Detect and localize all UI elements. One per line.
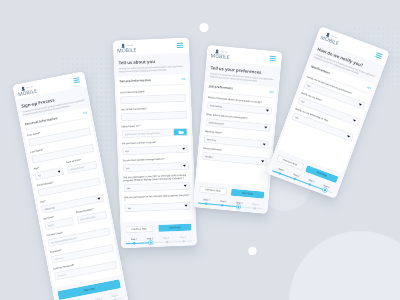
staticText: Next Step [316,171,327,177]
staticText: Step 4 [323,184,330,189]
staticText: Email Address* [37,181,54,187]
staticText: Place preference [203,147,222,152]
button[interactable] [38,177,101,197]
button[interactable]: Next Step [305,165,338,183]
button[interactable]: Next Step [231,189,264,199]
staticText: Working Hours* [204,130,224,135]
staticText: Yes [128,207,132,210]
staticText: Last School Attended* [120,90,145,94]
button[interactable]: Yes [297,96,360,126]
staticText: Step 3 [236,201,243,205]
staticText: City* [40,200,46,204]
staticText: MM/DD/YYYY [70,166,84,171]
staticText: Notifications [310,64,331,75]
button[interactable]: Yes [122,145,188,155]
button[interactable]: Select city [41,194,104,214]
other: City of Mobile logo [17,83,38,97]
staticText: MOBILE [117,47,137,54]
other: City of Mobile logo [320,30,342,46]
button[interactable]: Previous Step [125,225,154,233]
other: City of Mobile logo [117,43,137,53]
staticText: Step 3 [95,297,103,300]
staticText: Do you have a driver's license* [122,141,157,145]
staticText: Password* [50,249,62,254]
button[interactable]: Upload CV [173,128,188,136]
button[interactable] [28,127,91,147]
staticText: CITY OF [331,34,339,39]
button[interactable]: Previous Step [199,186,227,195]
staticText: Yes [306,84,311,88]
staticText: General information [119,78,151,83]
button[interactable]: Open menu [72,76,81,84]
staticText: 36602 [48,224,55,228]
staticText: Yes [295,116,299,120]
staticText: Zip Code* [43,216,54,221]
staticText: Step 2 [147,237,154,240]
button[interactable]: •••••••••••• [54,261,117,280]
staticText: Through our system we will guide you ste… [22,98,87,117]
button[interactable]: Next Step [57,279,121,300]
staticText: Did you participate in the summer jobs p… [124,194,190,202]
staticText: 4/4 [367,85,372,90]
button[interactable] [121,111,187,121]
staticText: 2/4 [181,77,186,81]
staticText: Notify me via email [301,92,322,102]
staticText: Contact Email* [46,231,64,237]
staticText: Next Step [169,226,180,229]
button[interactable]: Yes [124,202,191,212]
staticText: Tell us your preferences [210,64,262,75]
button[interactable]: (251) 208-7000 [76,211,107,224]
staticText: Through our system we will guide you ste… [210,72,277,84]
button[interactable]: Open menu [268,55,277,62]
staticText: MOBILE [17,87,38,98]
staticText: Sign-up Process [21,96,55,109]
staticText: Step 3 [163,236,170,240]
staticText: Mobile [205,155,213,159]
staticText: Step 4 [180,236,187,239]
staticText: Import your CV from Google Drive [125,132,161,136]
staticText: Phone Number* [75,208,95,214]
staticText: Morning [207,138,216,142]
other: City of Mobile logo [210,48,231,60]
staticText: How do we notify you? [316,46,364,68]
button[interactable]: Administrative [205,118,271,132]
staticText: First Name* [27,132,41,137]
button[interactable]: Previous Step [276,154,305,171]
button[interactable] [120,94,186,104]
staticText: What kind of job are you looking for? [206,113,248,120]
staticText: Tell us about you [119,58,156,65]
staticText: Yes [126,167,130,170]
button[interactable] [31,144,94,164]
button[interactable]: 36602 [44,217,74,230]
staticText: Next Step [83,287,95,292]
button[interactable]: ex.youremail@gmail.com [47,227,111,247]
staticText: Previous Step [205,188,221,193]
button[interactable]: Open menu [374,51,384,60]
staticText: CITY OF [220,50,228,53]
button[interactable]: Yes [303,80,366,110]
button[interactable]: Import your CV from Google Drive [121,128,188,138]
staticText: ex.youremail@gmail.com [51,237,77,245]
button[interactable]: Bartending [207,101,272,115]
staticText: CITY OF [126,44,134,46]
button[interactable]: Open menu [176,42,184,49]
staticText: Did you participate in the 2017 or 2018 … [123,174,189,182]
staticText: 1/4 [82,110,87,115]
staticText: Step 2 [293,173,300,178]
staticText: Yes [127,187,131,190]
button[interactable]: Morning [204,135,269,149]
button[interactable]: Yes [124,182,190,192]
button[interactable]: Yes [123,162,189,172]
button[interactable]: •••••••••••• [51,244,114,264]
button[interactable]: Mobile [202,152,267,166]
button[interactable]: Next Step [158,224,192,232]
staticText: •••••••••••• [54,256,64,261]
staticText: Bartending [210,104,222,108]
staticText: Select city [44,206,56,211]
button[interactable]: Yes [291,112,354,142]
button[interactable]: MM/DD/YYYY [67,160,98,174]
button[interactable]: 18 [34,167,64,180]
staticText: Notify me of each job with my preference… [306,76,353,95]
staticText: Date of Birth* [66,158,82,164]
staticText: Step 3 [308,178,315,184]
